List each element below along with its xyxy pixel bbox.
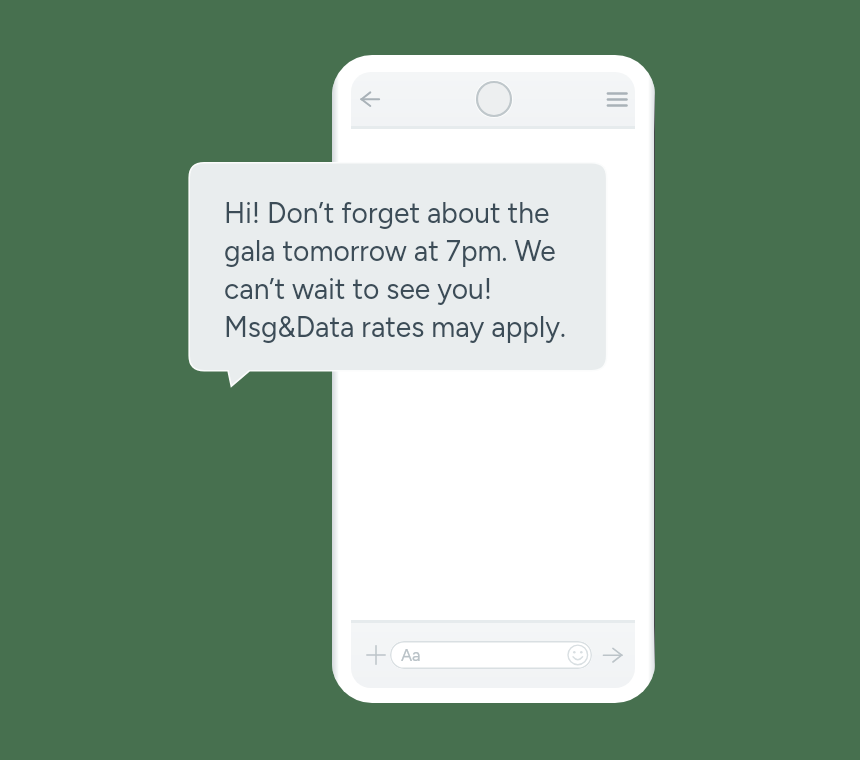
staticText: Aa — [401, 645, 421, 665]
button[interactable]: Menu — [599, 81, 635, 117]
button[interactable]: Contact avatar — [476, 81, 512, 117]
button[interactable]: Send — [595, 637, 631, 673]
button[interactable]: Add attachment — [358, 637, 394, 673]
button[interactable]: Back — [351, 81, 391, 121]
staticText: Hi! Don’t forget about the gala tomorrow… — [224, 196, 566, 344]
button[interactable]: Message input — [390, 641, 592, 669]
